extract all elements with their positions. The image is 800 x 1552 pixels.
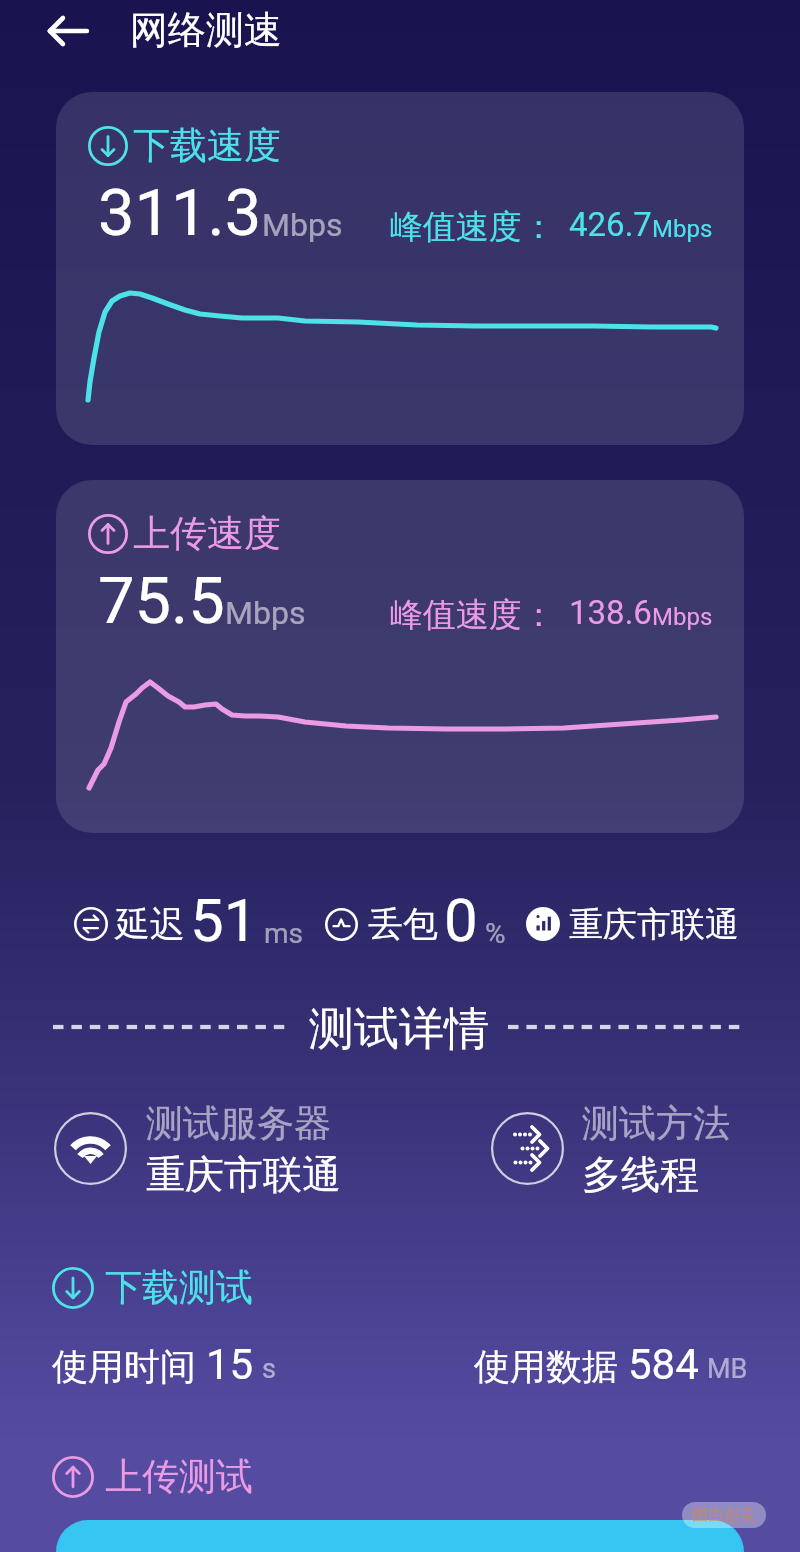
button[interactable]: 下载速度 xyxy=(56,92,744,445)
staticText: 重庆市联通 xyxy=(569,903,739,946)
button[interactable] xyxy=(54,1100,374,1196)
staticText: 584 xyxy=(628,1340,699,1389)
button[interactable]: 上传速度 xyxy=(56,480,744,833)
staticText: ms xyxy=(264,917,304,950)
staticText: 0 xyxy=(444,885,478,955)
staticText: 138.6 xyxy=(569,593,652,632)
staticText: MB xyxy=(707,1353,748,1385)
button[interactable]: Back xyxy=(37,0,99,62)
staticText: 图虫创意 xyxy=(692,1505,756,1525)
staticText: 丢包 xyxy=(368,902,438,946)
staticText: 峰值速度： xyxy=(390,206,555,248)
staticText: 网络测速 xyxy=(130,6,282,54)
staticText: s xyxy=(262,1353,276,1385)
staticText: 上传速度 xyxy=(133,510,281,557)
staticText: Mbps xyxy=(225,594,306,632)
staticText: 测试详情 xyxy=(309,1001,489,1057)
staticText: 下载测试 xyxy=(105,1264,253,1311)
staticText: Mbps xyxy=(652,215,713,243)
staticText: 多线程 xyxy=(582,1150,699,1196)
staticText: 下载速度 xyxy=(133,122,281,169)
staticText: 311.3 xyxy=(98,175,262,251)
staticText: % xyxy=(485,917,506,950)
staticText: 使用时间 xyxy=(52,1344,196,1389)
staticText: Mbps xyxy=(652,603,713,631)
staticText: 延迟 xyxy=(115,902,185,946)
staticText: 测试服务器 xyxy=(146,1100,331,1147)
staticText: Mbps xyxy=(262,206,343,244)
staticText: 使用数据 xyxy=(474,1344,618,1389)
staticText: 测试方法 xyxy=(582,1100,730,1147)
button[interactable] xyxy=(56,1520,744,1552)
staticText: 426.7 xyxy=(569,205,652,244)
staticText: 重庆市联通 xyxy=(146,1150,341,1196)
staticText: 75.5 xyxy=(98,563,225,639)
staticText: 峰值速度： xyxy=(390,594,555,636)
button[interactable] xyxy=(491,1100,800,1196)
staticText: 51 xyxy=(190,885,258,955)
staticText: 上传测试 xyxy=(105,1453,253,1500)
staticText: 15 xyxy=(206,1340,254,1389)
